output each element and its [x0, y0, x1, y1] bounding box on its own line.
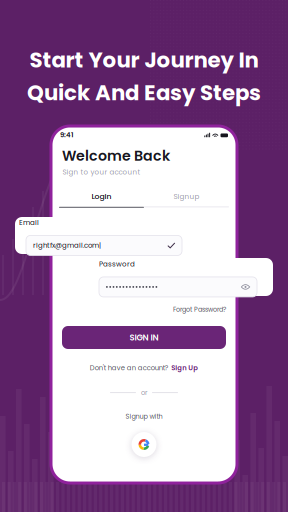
button[interactable]: Sign up with Google: [131, 432, 156, 457]
staticText: Quick And Easy Steps: [27, 78, 261, 108]
staticText: Signup: [173, 191, 199, 201]
staticText: Welcome Back: [62, 146, 170, 166]
staticText: Login: [91, 191, 111, 202]
staticText: Don't have an account?: [90, 363, 169, 372]
staticText: Sign Up: [171, 363, 198, 372]
staticText: Email: [19, 218, 39, 227]
staticText: Sign to your account: [62, 167, 140, 177]
button[interactable]: Login: [59, 191, 144, 208]
staticText: Signup with: [125, 412, 162, 421]
staticText: or: [141, 388, 147, 397]
button[interactable]: SIGN IN: [62, 326, 226, 349]
staticText: Password: [99, 259, 135, 269]
staticText: Start Your Journey In: [29, 45, 258, 75]
button[interactable]: Signup: [144, 191, 229, 207]
staticText: Forgot Password?: [173, 305, 226, 314]
staticText: SIGN IN: [129, 332, 158, 343]
button[interactable]: Sign Up: [171, 363, 198, 372]
button[interactable]: Forgot Password?: [60, 305, 226, 314]
staticText: 9:41: [60, 130, 74, 140]
staticText: rightfx@gmail.com|: [33, 241, 101, 250]
